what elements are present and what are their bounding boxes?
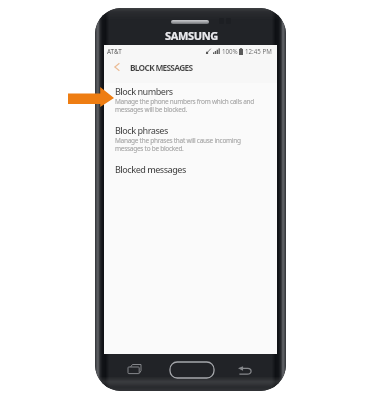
button[interactable]: Recent apps xyxy=(123,358,145,380)
button[interactable]: Back xyxy=(234,359,256,381)
button[interactable]: Navigate up xyxy=(104,54,130,80)
staticText: SAMSUNG xyxy=(165,28,218,41)
staticText: Block phrases xyxy=(115,124,168,136)
staticText: 100% xyxy=(222,47,238,55)
staticText: AT&T xyxy=(107,47,122,55)
button[interactable]: Block phrases xyxy=(104,124,277,153)
button[interactable]: Block numbers xyxy=(104,85,277,114)
staticText: Manage the phone numbers from which call… xyxy=(115,97,269,114)
staticText: Block numbers xyxy=(115,85,173,97)
staticText: Blocked messages xyxy=(115,163,186,175)
staticText: Manage the phrases that will cause incom… xyxy=(115,136,269,153)
button[interactable]: Home xyxy=(165,358,218,382)
staticText: 12:45 PM xyxy=(245,47,272,55)
button[interactable]: Blocked messages xyxy=(104,163,277,175)
staticText: BLOCK MESSAGES xyxy=(130,62,193,73)
